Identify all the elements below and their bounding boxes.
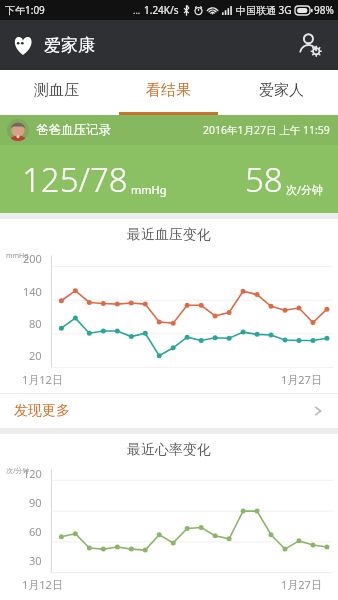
staticText: 次/分钟: [6, 466, 30, 476]
staticText: 1月12日: [22, 372, 63, 387]
button[interactable]: 看结果: [112, 70, 225, 115]
staticText: 爱家康: [44, 35, 95, 56]
staticText: 下午1:09: [5, 3, 45, 17]
staticText: 120: [23, 466, 42, 481]
staticText: 60: [29, 524, 42, 539]
button[interactable]: 测血压: [0, 70, 112, 115]
staticText: 次/分钟: [286, 182, 324, 197]
staticText: 1月12日: [22, 577, 63, 592]
staticText: 125/78: [22, 157, 128, 202]
staticText: 58: [245, 157, 283, 202]
button[interactable]: 爸爸血压记录: [0, 115, 338, 213]
staticText: 中国联通 3G: [236, 3, 292, 17]
staticText: 1月27日: [281, 577, 322, 592]
staticText: 30: [29, 553, 42, 568]
button[interactable]: 发现更多: [0, 394, 338, 428]
staticText: 1.24K/s: [144, 3, 179, 17]
staticText: 200: [23, 251, 42, 266]
button[interactable]: Account settings: [292, 27, 328, 63]
staticText: ...: [133, 4, 141, 16]
button[interactable]: 爱家人: [225, 70, 338, 115]
staticText: 测血压: [34, 81, 79, 100]
staticText: 80: [29, 316, 42, 331]
staticText: 爱家人: [259, 81, 304, 100]
staticText: 90: [29, 495, 42, 510]
staticText: 2016年1月27日 上午 11:59: [203, 123, 330, 137]
staticText: 140: [23, 284, 42, 299]
staticText: 98%: [314, 3, 334, 17]
staticText: 爸爸血压记录: [36, 122, 111, 138]
staticText: mmHg: [6, 251, 29, 261]
staticText: 20: [29, 348, 42, 363]
staticText: mmHg: [131, 182, 167, 197]
staticText: 看结果: [146, 81, 191, 100]
staticText: 1月27日: [281, 372, 322, 387]
staticText: 发现更多: [14, 402, 70, 420]
staticText: 最近心率变化: [127, 441, 211, 459]
staticText: 最近血压变化: [127, 226, 211, 244]
